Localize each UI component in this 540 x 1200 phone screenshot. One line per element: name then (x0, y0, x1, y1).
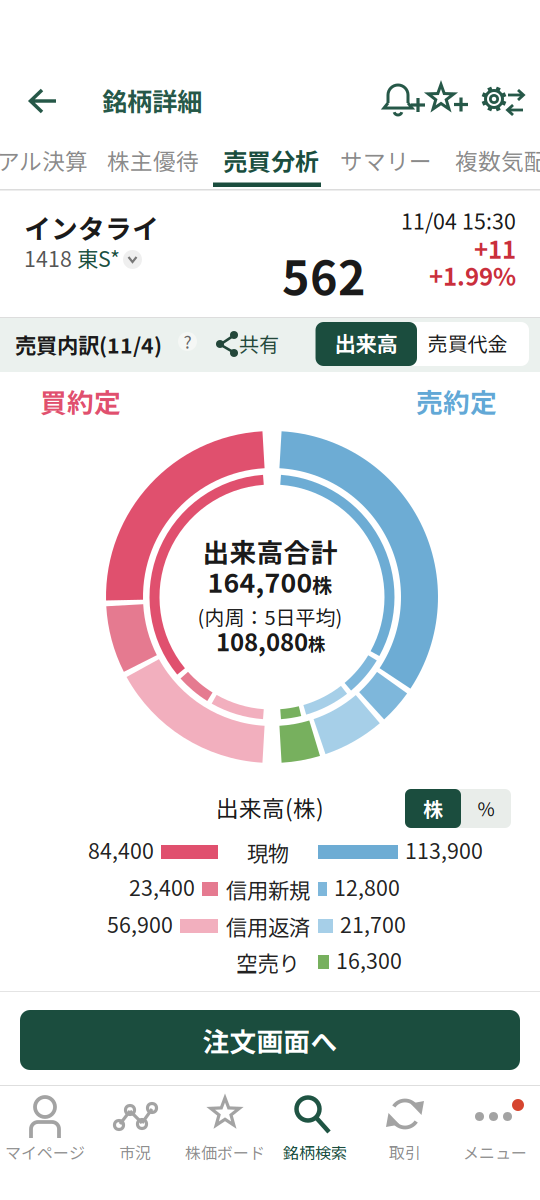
staticText: 56,900 (107, 909, 173, 939)
staticText: 株 (312, 570, 332, 598)
staticText: 市況 (119, 1141, 151, 1163)
staticText: 信用返済 (226, 911, 310, 941)
staticText: マイページ (5, 1141, 85, 1163)
staticText: 108,080 (216, 624, 308, 658)
staticText: 銘柄詳細 (102, 82, 202, 118)
staticText: +11 (474, 231, 516, 265)
staticText: 164,700 (207, 562, 312, 600)
staticText: 113,900 (405, 835, 483, 865)
staticText: 出来高(株) (216, 791, 324, 823)
staticText: 売買内訳(11/4) (15, 329, 162, 359)
staticText: % (477, 795, 494, 821)
staticText: 11/04 15:30 (401, 205, 516, 235)
staticText: 84,400 (88, 835, 154, 865)
staticText: 1418 (24, 243, 72, 273)
staticText: 銘柄検索 (283, 1141, 347, 1163)
staticText: 16,300 (336, 945, 402, 975)
staticText: 空売り (236, 947, 299, 977)
staticText: 信用新規 (226, 874, 310, 904)
staticText: 株主優待 (107, 144, 199, 176)
staticText: 売約定 (416, 382, 497, 420)
staticText: 注文画面へ (202, 1021, 337, 1059)
staticText: ? (183, 329, 191, 353)
staticText: 共有 (239, 329, 279, 357)
staticText: +1.99% (429, 258, 516, 292)
staticText: 出来高 (334, 328, 397, 358)
staticText: 取引 (389, 1141, 421, 1163)
staticText: 現物 (247, 837, 289, 867)
staticText: 株 (308, 631, 325, 655)
staticText: 562 (282, 242, 366, 308)
staticText: メニュー (463, 1141, 527, 1163)
staticText: 株価ボード (185, 1141, 265, 1163)
staticText: (内周：5日平均) (197, 602, 342, 630)
staticText: 株 (423, 794, 443, 822)
staticText: 出来高合計 (202, 532, 337, 570)
staticText: 21,700 (340, 909, 406, 939)
staticText: 東S* (77, 243, 120, 273)
staticText: サマリー (340, 144, 432, 176)
staticText: 売買代金 (427, 329, 507, 357)
staticText: 12,800 (334, 872, 400, 902)
staticText: 複数気配 (455, 144, 540, 176)
staticText: インタライ (24, 208, 159, 246)
staticText: 売買分析 (223, 143, 319, 177)
staticText: 23,400 (129, 872, 195, 902)
staticText: 買約定 (40, 382, 121, 420)
staticText: アル決算 (0, 144, 88, 176)
